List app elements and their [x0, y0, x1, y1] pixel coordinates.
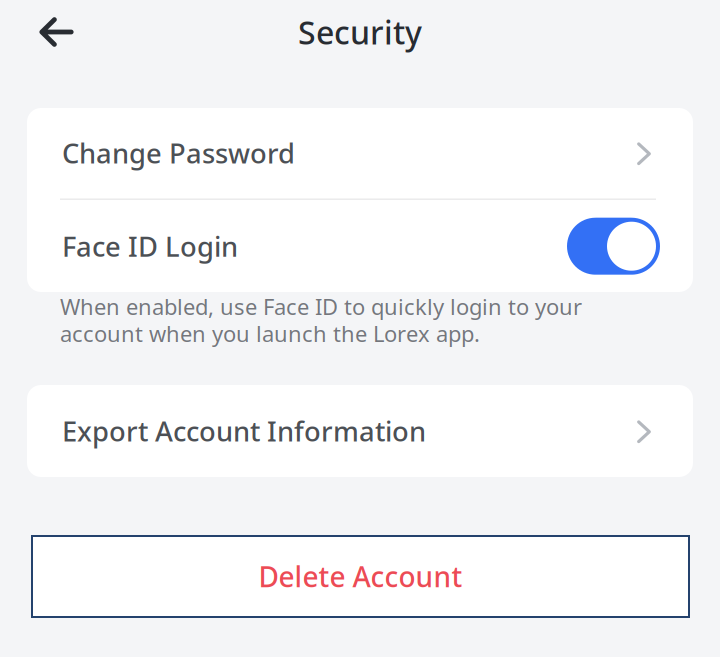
- button[interactable]: Change Password: [27, 107, 693, 198]
- staticText: Change Password: [62, 134, 295, 172]
- staticText: Delete Account: [258, 557, 462, 595]
- staticText: Export Account Information: [62, 412, 426, 450]
- staticText: Face ID Login: [62, 228, 238, 265]
- button[interactable]: Delete Account: [32, 536, 689, 617]
- button[interactable]: Face ID Login: [567, 218, 660, 275]
- staticText: Security: [298, 10, 422, 54]
- button[interactable]: Back: [0, 0, 96, 64]
- button[interactable]: Export Account Information: [27, 385, 693, 477]
- staticText: When enabled, use Face ID to quickly log…: [60, 293, 582, 347]
